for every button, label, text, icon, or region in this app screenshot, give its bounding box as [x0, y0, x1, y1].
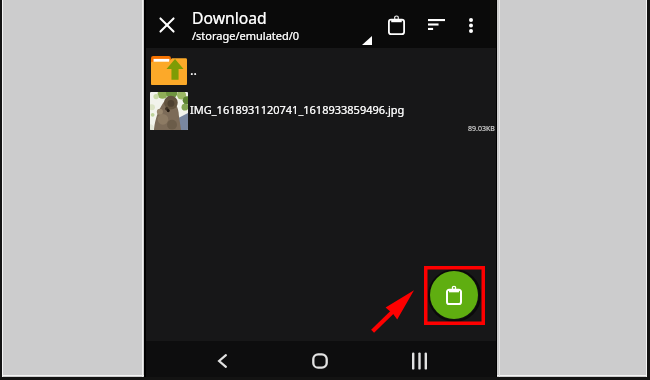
button[interactable]: More options [455, 9, 487, 41]
button[interactable]: Paste from clipboard [430, 271, 478, 319]
staticText: 89.03KB [468, 124, 495, 134]
button[interactable]: Recent apps [397, 341, 441, 380]
button[interactable]: Clipboard [380, 9, 412, 41]
button[interactable]: IMG_1618931120741_1618933859496.jpg [144, 87, 496, 131]
button[interactable]: Close [151, 9, 183, 41]
staticText: /storage/emulated/0 [192, 28, 300, 43]
button[interactable]: Home [298, 341, 342, 380]
staticText: Download [192, 7, 267, 28]
button[interactable]: .. [144, 48, 496, 87]
staticText: IMG_1618931120741_1618933859496.jpg [190, 102, 405, 117]
button[interactable]: Sort [420, 8, 452, 40]
other [369, 283, 421, 335]
staticText: .. [190, 61, 197, 79]
button[interactable]: Back [200, 341, 244, 380]
